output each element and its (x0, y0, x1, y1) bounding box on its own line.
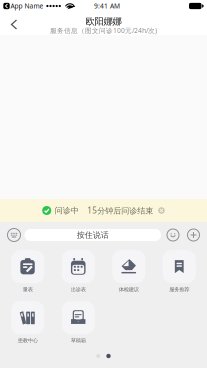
staticText: 出诊表 (71, 286, 86, 293)
staticText: 体检建议 (119, 286, 139, 293)
staticText: 欧阳娜娜 (85, 16, 121, 27)
button[interactable]: 按住说话 (24, 229, 161, 241)
button[interactable]: 草稿箱 (62, 301, 95, 344)
staticText: App Name (10, 2, 43, 10)
staticText: 服务推荐 (169, 286, 189, 293)
button[interactable]: 量表 (11, 250, 44, 293)
button[interactable]: 服务推荐 (163, 250, 196, 293)
button[interactable]: Keyboard (7, 228, 20, 241)
staticText: 服务信息（图文问诊100元/24h/次) (50, 26, 157, 35)
button[interactable]: 患教中心 (11, 301, 44, 344)
staticText: 按住说话 (77, 230, 109, 240)
button[interactable]: Back (0, 13, 23, 34)
button[interactable]: Emoji (167, 229, 179, 241)
staticText: 患教中心 (18, 337, 38, 344)
staticText: 9:41 AM (94, 2, 120, 10)
button[interactable]: Dismiss (158, 207, 165, 214)
staticText: 15分钟后问诊结束 (87, 205, 153, 216)
button[interactable]: 体检建议 (112, 250, 145, 293)
staticText: 草稿箱 (71, 337, 86, 344)
button[interactable]: More (187, 229, 199, 241)
staticText: 问诊中 (55, 206, 79, 215)
button[interactable]: 出诊表 (62, 250, 95, 293)
staticText: 量表 (23, 286, 33, 293)
